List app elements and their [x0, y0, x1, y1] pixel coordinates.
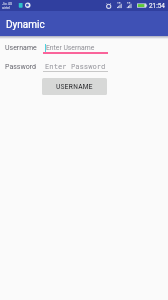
staticText: Enter Username [46, 44, 95, 52]
staticText: Dynamic [6, 19, 45, 31]
staticText: USERNAME [56, 83, 93, 91]
staticText: Enter Password [45, 61, 106, 70]
button[interactable]: USERNAME [42, 78, 107, 95]
other: Status icons [0, 0, 168, 11]
staticText: 21:54 [149, 2, 165, 10]
staticText: airtel [2, 6, 11, 10]
staticText: Password [5, 63, 36, 71]
staticText: Jio 4G [2, 2, 13, 6]
staticText: Username [5, 44, 37, 52]
